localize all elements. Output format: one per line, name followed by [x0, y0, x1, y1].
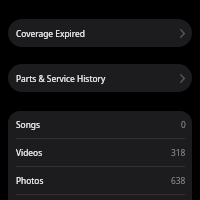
button[interactable]: Parts & Service History — [8, 64, 192, 92]
other: Open — [180, 74, 185, 83]
button[interactable]: Photos — [8, 167, 192, 195]
staticText: 318 — [171, 147, 186, 158]
button[interactable]: Coverage Expired — [8, 19, 192, 47]
button[interactable]: Songs — [8, 111, 192, 139]
staticText: Videos — [16, 147, 43, 158]
staticText: Parts & Service History — [16, 73, 106, 84]
staticText: 0 — [181, 119, 186, 130]
staticText: Coverage Expired — [16, 28, 85, 39]
staticText: 638 — [171, 175, 186, 186]
staticText: Songs — [16, 119, 41, 130]
other: Open — [180, 29, 185, 38]
staticText: Photos — [16, 175, 44, 186]
button[interactable]: Videos — [8, 139, 192, 167]
